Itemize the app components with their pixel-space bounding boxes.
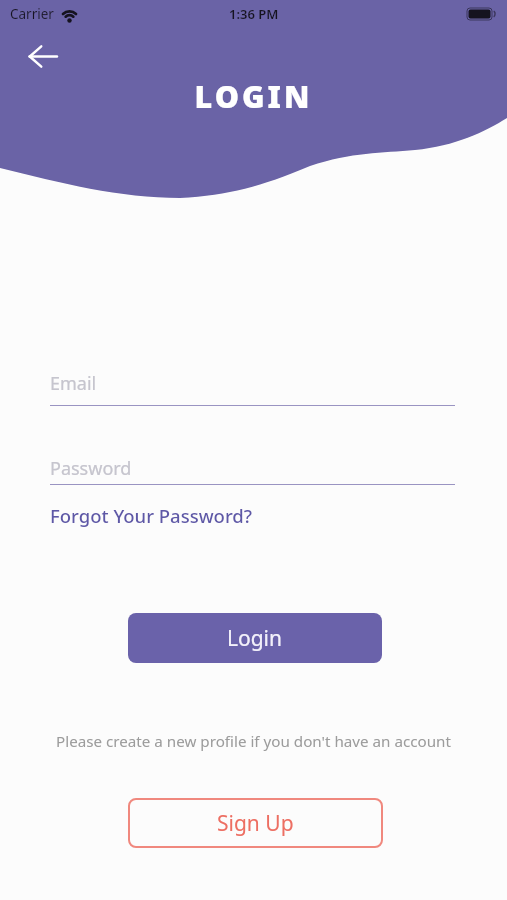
staticText: Email xyxy=(50,371,97,396)
button[interactable]: Forgot Your Password? xyxy=(50,503,253,528)
staticText: 1:36 PM xyxy=(229,5,279,23)
staticText: Sign Up xyxy=(217,809,294,838)
button[interactable]: Sign Up xyxy=(128,798,383,848)
staticText: Password xyxy=(50,456,132,481)
staticText: Login xyxy=(227,624,283,653)
button[interactable]: Login xyxy=(128,613,382,663)
staticText: Please create a new profile if you don't… xyxy=(0,731,507,752)
button[interactable] xyxy=(20,38,66,74)
staticText: Carrier xyxy=(10,5,54,23)
staticText: LOGIN xyxy=(0,75,507,117)
